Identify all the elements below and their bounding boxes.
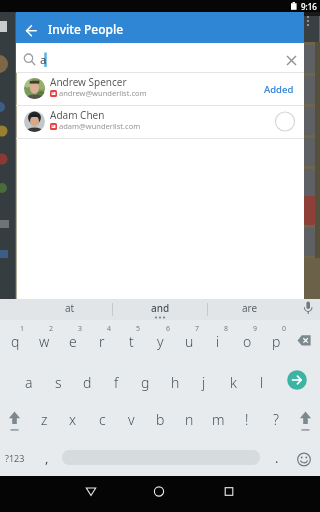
button[interactable]: l: [222, 370, 302, 394]
staticText: ?: [273, 410, 279, 429]
staticText: are: [242, 301, 258, 315]
staticText: g: [141, 373, 150, 392]
staticText: a: [40, 52, 47, 68]
button[interactable]: s: [18, 370, 98, 394]
staticText: y: [157, 332, 164, 351]
button[interactable]: [16, 43, 304, 72]
staticText: x: [69, 410, 77, 429]
button[interactable]: [210, 299, 290, 320]
button[interactable]: [214, 478, 244, 506]
button[interactable]: j: [164, 370, 244, 394]
button[interactable]: [76, 478, 106, 506]
button[interactable]: r: [62, 329, 142, 353]
staticText: ?123: [5, 452, 25, 464]
staticText: t: [129, 332, 134, 351]
button[interactable]: i: [178, 329, 258, 353]
button[interactable]: p: [236, 329, 316, 353]
staticText: .: [275, 449, 279, 467]
staticText: b: [156, 410, 165, 429]
staticText: i: [216, 332, 220, 351]
staticText: k: [230, 373, 237, 392]
staticText: m: [212, 410, 225, 429]
button[interactable]: k: [193, 370, 273, 394]
staticText: 6: [166, 324, 171, 334]
staticText: and: [151, 301, 170, 315]
button[interactable]: u: [149, 329, 229, 353]
staticText: w: [39, 332, 50, 351]
staticText: s: [55, 373, 62, 392]
button[interactable]: z: [4, 407, 84, 431]
staticText: 3: [78, 324, 83, 334]
staticText: 8: [224, 324, 229, 334]
staticText: u: [185, 332, 194, 351]
staticText: Adam Chen: [50, 108, 105, 122]
staticText: n: [185, 410, 194, 429]
staticText: r: [99, 332, 105, 351]
button[interactable]: ,: [7, 446, 87, 470]
staticText: c: [99, 410, 106, 429]
button[interactable]: e: [33, 329, 113, 353]
button[interactable]: [120, 299, 210, 320]
staticText: 9: [253, 324, 258, 334]
button[interactable]: m: [178, 407, 258, 431]
staticText: q: [11, 332, 20, 351]
staticText: !: [245, 410, 249, 429]
staticText: 5: [136, 324, 141, 334]
staticText: p: [272, 332, 281, 351]
staticText: a: [25, 373, 33, 392]
button[interactable]: n: [149, 407, 229, 431]
staticText: adam@wunderlist.com: [59, 121, 141, 131]
button[interactable]: o: [207, 329, 287, 353]
button[interactable]: b: [120, 407, 200, 431]
staticText: Added: [264, 83, 294, 96]
button[interactable]: [144, 478, 174, 506]
staticText: at: [65, 301, 75, 315]
button[interactable]: w: [4, 329, 84, 353]
staticText: z: [41, 410, 48, 429]
button[interactable]: ?123: [0, 446, 55, 470]
button[interactable]: [16, 106, 304, 138]
staticText: 2: [49, 324, 54, 334]
button[interactable]: .: [237, 446, 317, 470]
staticText: o: [243, 332, 252, 351]
button[interactable]: q: [0, 329, 55, 353]
staticText: 0: [282, 324, 287, 334]
staticText: 1: [20, 324, 25, 334]
button[interactable]: a: [0, 370, 69, 394]
staticText: ,: [45, 449, 49, 467]
staticText: 9:16: [301, 1, 317, 12]
button[interactable]: y: [120, 329, 200, 353]
staticText: Andrew Spencer: [50, 75, 127, 89]
button[interactable]: Added: [244, 81, 294, 97]
staticText: v: [128, 410, 135, 429]
staticText: d: [83, 373, 92, 392]
staticText: 4: [107, 324, 112, 334]
staticText: f: [114, 373, 119, 392]
button[interactable]: g: [105, 370, 185, 394]
staticText: 7: [195, 324, 200, 334]
button[interactable]: !: [207, 407, 287, 431]
button[interactable]: h: [135, 370, 215, 394]
button[interactable]: f: [76, 370, 156, 394]
button[interactable]: [24, 20, 44, 40]
staticText: j: [202, 373, 206, 392]
button[interactable]: ?: [236, 407, 316, 431]
button[interactable]: x: [33, 407, 113, 431]
button[interactable]: d: [47, 370, 127, 394]
staticText: e: [69, 332, 77, 351]
button[interactable]: t: [91, 329, 171, 353]
button[interactable]: [30, 299, 120, 320]
staticText: l: [260, 373, 264, 392]
button[interactable]: c: [62, 407, 142, 431]
staticText: Invite People: [48, 21, 124, 37]
button[interactable]: v: [91, 407, 171, 431]
staticText: h: [171, 373, 180, 392]
staticText: andrew@wunderlist.com: [59, 88, 147, 98]
button[interactable]: [16, 73, 304, 105]
